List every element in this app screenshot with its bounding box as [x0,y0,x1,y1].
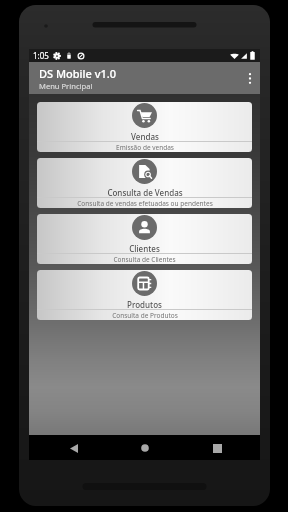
staticText: Consulta de Produtos [112,311,178,320]
button[interactable]: More options [240,62,260,94]
button[interactable]: Home [135,438,155,458]
button[interactable]: Consulta de Vendas [37,158,252,208]
staticText: Consulta de vendas efetuadas ou pendente… [77,199,213,208]
staticText: Consulta de Vendas [107,187,183,198]
staticText: Clientes [129,243,160,254]
button[interactable]: Back [64,438,84,458]
button[interactable]: Clientes [37,214,252,264]
staticText: Menu Principal [39,81,93,91]
button[interactable]: Produtos [37,270,252,320]
staticText: Vendas [131,131,159,142]
staticText: Produtos [127,299,162,310]
staticText: Consulta de Clientes [113,255,176,264]
staticText: 1:05 [33,50,49,61]
staticText: DS Mobile v1.0 [39,66,117,81]
button[interactable]: Recent apps [207,438,227,458]
button[interactable]: Vendas [37,102,252,152]
staticText: Emissão de vendas [116,143,174,152]
